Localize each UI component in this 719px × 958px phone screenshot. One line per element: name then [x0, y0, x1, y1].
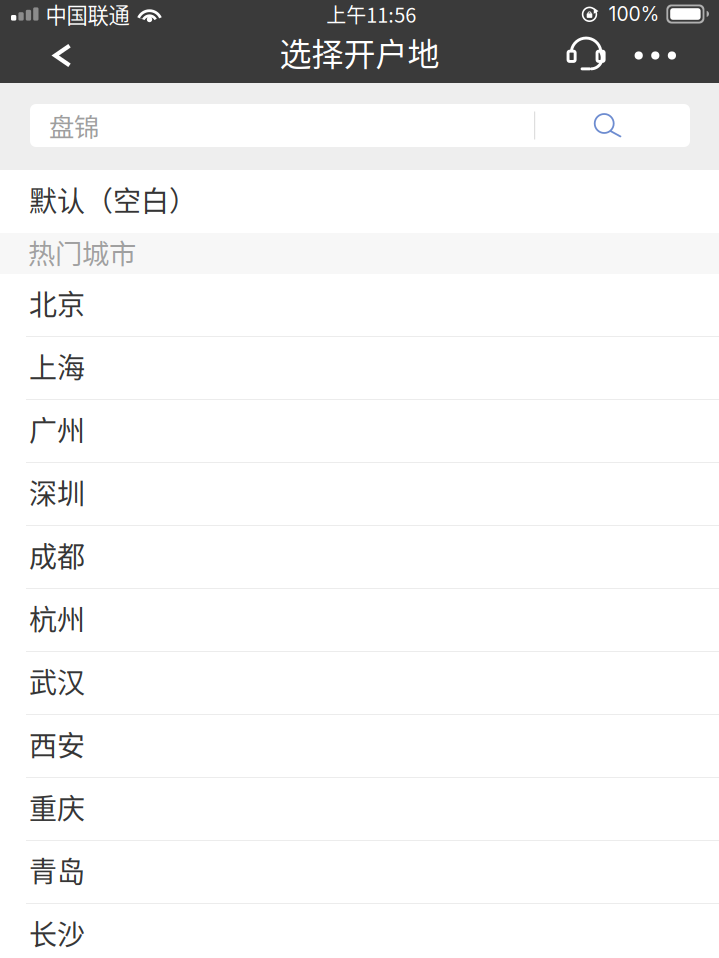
button[interactable]: 深圳 — [0, 463, 719, 526]
staticText: 北京 — [29, 283, 85, 323]
staticText: 深圳 — [29, 472, 85, 512]
staticText: 上海 — [29, 346, 85, 386]
staticText: 成都 — [29, 535, 85, 575]
button[interactable]: 武汉 — [0, 652, 719, 715]
staticText: 默认（空白） — [29, 179, 197, 220]
button[interactable]: 重庆 — [0, 778, 719, 841]
staticText: 重庆 — [29, 787, 85, 827]
button[interactable]: Back — [0, 29, 95, 81]
button[interactable]: Customer service — [542, 29, 621, 81]
button[interactable]: Search — [535, 104, 690, 147]
button[interactable]: 广州 — [0, 400, 719, 463]
staticText: 广州 — [29, 409, 85, 449]
staticText: 中国联通 — [45, 0, 129, 29]
staticText: 杭州 — [29, 598, 85, 638]
staticText: 武汉 — [29, 661, 85, 701]
staticText: 100% — [608, 2, 659, 26]
staticText: 长沙 — [29, 913, 85, 953]
button[interactable]: 长沙 — [0, 904, 719, 958]
button[interactable]: More — [621, 33, 719, 78]
staticText: 热门城市 — [28, 232, 136, 272]
staticText: 盘锦 — [49, 107, 99, 144]
staticText: 西安 — [29, 724, 85, 764]
button[interactable]: 默认（空白） — [0, 170, 719, 233]
staticText: 上午11:56 — [326, 0, 416, 28]
button[interactable]: 上海 — [0, 337, 719, 400]
button[interactable]: 西安 — [0, 715, 719, 778]
button[interactable]: 成都 — [0, 526, 719, 589]
staticText: 青岛 — [29, 850, 85, 890]
button[interactable]: 北京 — [0, 274, 719, 337]
button[interactable]: 杭州 — [0, 589, 719, 652]
button[interactable]: 青岛 — [0, 841, 719, 904]
staticText: 选择开户地 — [279, 29, 439, 75]
